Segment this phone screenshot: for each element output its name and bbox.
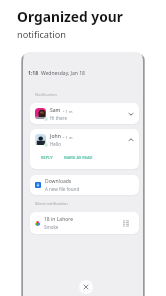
staticText: 1:18 (28, 70, 38, 77)
staticText: Downloads (45, 178, 72, 185)
staticText: A new file found (45, 186, 80, 192)
staticText: Smoke (44, 224, 59, 230)
staticText: John (50, 133, 61, 140)
staticText: • 1 m (63, 135, 73, 140)
button[interactable]: 18 in Lahore (30, 212, 139, 234)
staticText: 18 in Lahore (44, 216, 74, 223)
staticText: Silent notification (35, 201, 68, 206)
button[interactable]: Sam (30, 103, 139, 124)
button[interactable]: Downloads (30, 175, 139, 195)
staticText: Hello (50, 141, 61, 147)
button[interactable]: REPLY (41, 155, 53, 160)
button[interactable]: John (30, 129, 139, 169)
staticText: notification (17, 28, 66, 41)
other: Collapse (128, 137, 134, 143)
other: Forecast (123, 220, 129, 227)
staticText: Wednesday, Jan 18 (41, 70, 85, 77)
staticText: Notification (35, 92, 57, 97)
staticText: • 1 m (63, 109, 73, 114)
staticText: Organized your (17, 7, 124, 26)
staticText: Sam (50, 107, 61, 114)
button[interactable]: Close notifications (79, 280, 93, 294)
staticText: Hi there (50, 115, 67, 121)
other: Expand (128, 111, 134, 117)
button[interactable]: MARK AS READ (64, 155, 93, 160)
